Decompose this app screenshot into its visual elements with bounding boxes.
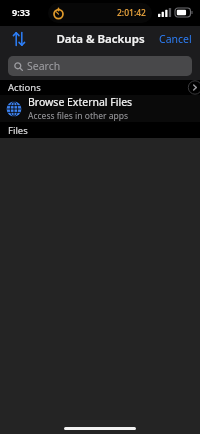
button[interactable]: Browse External Files — [0, 95, 200, 122]
staticText: Files — [8, 124, 28, 137]
staticText: Search — [27, 59, 61, 73]
button[interactable]: Sort — [8, 28, 30, 50]
staticText: Actions — [8, 81, 41, 94]
button[interactable]: Cancel — [151, 28, 200, 50]
button[interactable]: Search — [8, 56, 192, 76]
staticText: 9:33 — [12, 6, 30, 18]
staticText: 2:01:42 — [117, 7, 146, 19]
staticText: Data & Backups — [56, 31, 145, 47]
staticText: Browse External Files — [28, 95, 133, 109]
staticText: Cancel — [159, 32, 192, 46]
staticText: Access files in other apps — [28, 110, 129, 122]
button[interactable]: Next — [184, 80, 200, 95]
